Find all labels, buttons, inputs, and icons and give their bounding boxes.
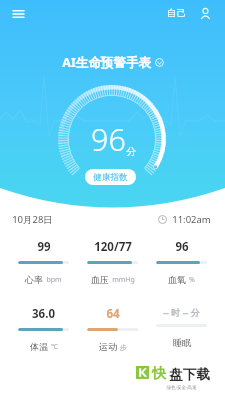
button[interactable]: Profile: [198, 6, 213, 21]
staticText: 健康指数: [93, 172, 128, 183]
button[interactable]: -- 时 -- 分: [147, 306, 216, 348]
staticText: 96: [175, 239, 189, 255]
staticText: 血氧: [168, 274, 186, 285]
staticText: 心率: [25, 274, 43, 285]
button[interactable]: Menu: [7, 2, 30, 25]
staticText: 体温: [30, 341, 48, 352]
button[interactable]: 99: [9, 239, 78, 285]
staticText: 96: [91, 118, 126, 160]
staticText: 绿色·安全·高速: [166, 384, 197, 390]
staticText: 血压: [91, 274, 109, 285]
staticText: 睡眠: [173, 337, 191, 348]
button[interactable]: 36.0: [9, 306, 78, 352]
staticText: 120/77: [94, 239, 132, 255]
staticText: 36.0: [32, 306, 55, 322]
button[interactable]: 自己: [165, 4, 188, 22]
staticText: 步: [120, 343, 127, 352]
staticText: 10月28日: [12, 213, 53, 226]
staticText: ℃: [51, 342, 58, 352]
staticText: AI生命预警手表: [62, 54, 151, 71]
staticText: 盘下载: [169, 366, 210, 383]
staticText: 快: [152, 365, 166, 383]
staticText: 11:02am: [172, 213, 211, 226]
staticText: %: [189, 275, 195, 285]
staticText: 运动: [99, 341, 117, 352]
staticText: 64: [106, 306, 120, 322]
button[interactable]: 120/77: [78, 239, 147, 285]
button[interactable]: 64: [78, 306, 147, 352]
staticText: 分: [126, 145, 136, 158]
staticText: -- 时 -- 分: [163, 306, 200, 318]
button[interactable]: 96: [147, 239, 216, 285]
staticText: mmHg: [112, 275, 135, 285]
staticText: bpm: [46, 275, 62, 285]
staticText: 99: [37, 239, 51, 255]
button[interactable]: 健康指数: [85, 169, 136, 185]
staticText: 自己: [167, 7, 186, 19]
